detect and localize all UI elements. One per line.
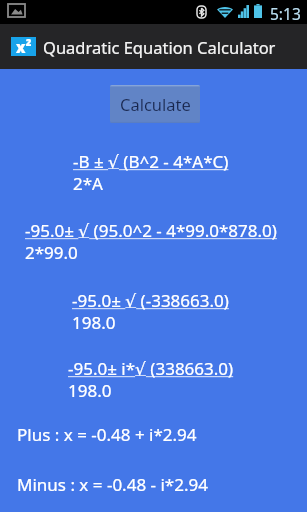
staticText: -95.0± √ (-338663.0) bbox=[72, 289, 229, 311]
staticText: x² bbox=[16, 37, 32, 56]
staticText: 2*99.0 bbox=[25, 241, 78, 264]
staticText: -95.0± i*√ (338663.0) bbox=[68, 357, 234, 379]
other: App icon bbox=[11, 37, 36, 56]
staticText: 198.0 bbox=[72, 311, 116, 334]
staticText: -95.0± √ (95.0^2 - 4*99.0*878.0) bbox=[25, 219, 277, 241]
staticText: -B ± √ (B^2 - 4*A*C) bbox=[73, 150, 229, 172]
staticText: 198.0 bbox=[68, 379, 112, 402]
button[interactable]: Calculate bbox=[110, 85, 200, 123]
staticText: Quadratic Equation Calculator bbox=[43, 36, 276, 58]
staticText: Minus : x = -0.48 - i*2.94 bbox=[17, 473, 208, 496]
staticText: 2*A bbox=[73, 172, 103, 195]
staticText: Plus : x = -0.48 + i*2.94 bbox=[17, 423, 197, 446]
staticText: Calculate bbox=[120, 93, 191, 115]
staticText: 5:13 bbox=[270, 3, 301, 24]
